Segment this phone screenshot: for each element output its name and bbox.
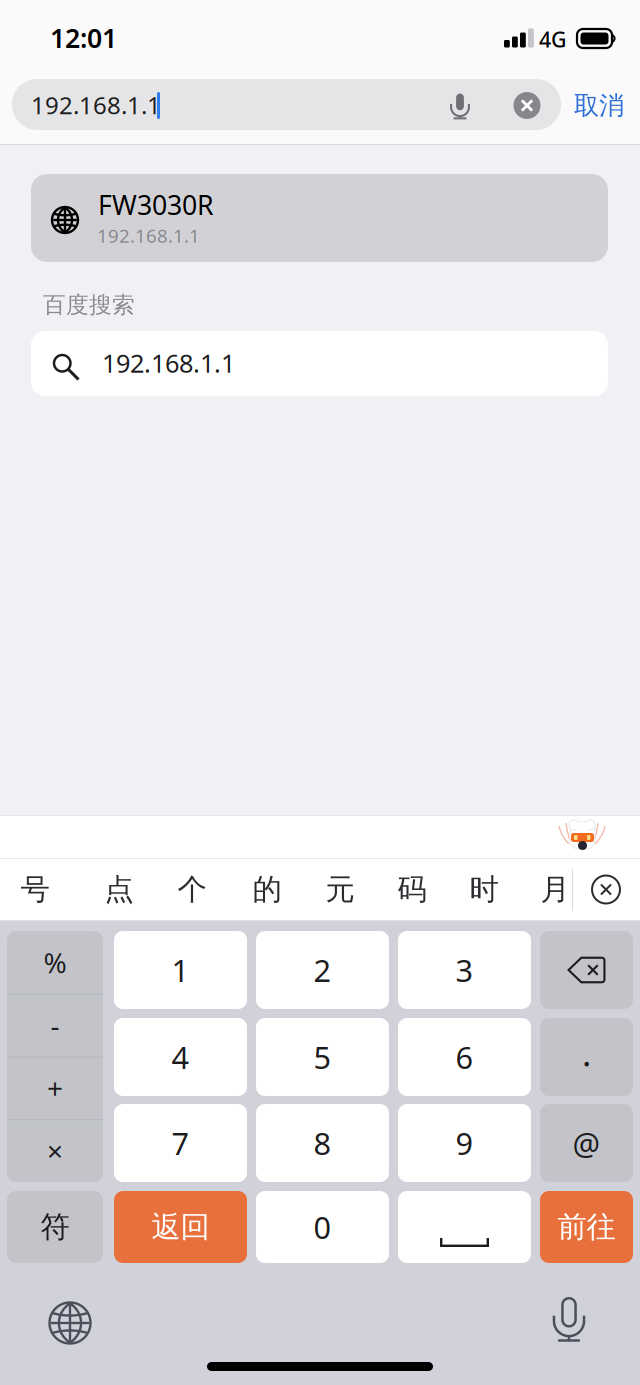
button[interactable]: 8 [256,1104,389,1182]
button[interactable]: Space [398,1191,531,1263]
button[interactable]: 192.168.1.1 [31,331,608,396]
staticText: + [47,1069,63,1106]
button[interactable]: 6 [398,1018,531,1096]
staticText: 时 [469,871,498,907]
staticText: . [582,1030,591,1076]
staticText: 月 [540,871,569,907]
button[interactable]: 0 [256,1191,389,1263]
button[interactable]: 号 [0,858,70,921]
staticText: 192.168.1.1 [102,346,235,380]
staticText: 号 [20,871,49,907]
button[interactable]: 时 [449,858,519,921]
staticText: 4 [171,1037,189,1077]
button[interactable]: 符 [7,1191,103,1263]
staticText: 2 [313,950,331,990]
button[interactable]: 7 [114,1104,247,1182]
staticText: 元 [325,871,354,907]
staticText: 0 [313,1207,331,1247]
staticText: 点 [104,871,133,907]
button[interactable]: - [7,994,103,1057]
staticText: 码 [397,871,426,907]
button[interactable]: Close candidates [573,858,639,921]
staticText: % [43,944,66,981]
button[interactable]: 9 [398,1104,531,1182]
staticText: 前往 [557,1209,615,1245]
staticText: 1 [171,950,189,990]
button[interactable]: 的 [232,858,302,921]
button[interactable]: 点 [84,858,154,921]
button[interactable]: 1 [114,931,247,1009]
button[interactable]: 个 [157,858,227,921]
staticText: 个 [177,871,206,907]
staticText: 符 [40,1209,69,1245]
staticText: 192.168.1.1 [97,223,200,248]
button[interactable]: × [7,1119,103,1182]
staticText: 192.168.1.1 [31,89,161,121]
button[interactable]: Delete [540,931,633,1009]
staticText: 取消 [574,90,624,121]
button[interactable]: FW3030R [31,174,608,262]
button[interactable]: 2 [256,931,389,1009]
staticText: 的 [252,871,281,907]
button[interactable]: 3 [398,931,531,1009]
button[interactable]: 取消 [574,90,632,121]
staticText: 7 [171,1123,189,1163]
button[interactable]: Switch keyboard [35,1288,105,1358]
staticText: × [47,1132,63,1169]
staticText: @ [572,1123,600,1163]
staticText: 百度搜索 [43,291,135,319]
button[interactable]: . [540,1018,633,1096]
staticText: 9 [455,1123,473,1163]
button[interactable]: Dictation [539,1290,599,1350]
staticText: 5 [313,1037,331,1077]
staticText: FW3030R [98,187,214,222]
button[interactable]: 码 [377,858,447,921]
staticText: 3 [455,950,473,990]
button[interactable]: Clear text [502,80,552,131]
staticText: 12:01 [50,20,117,55]
staticText: - [50,1006,59,1044]
button[interactable]: 月 [520,858,590,921]
button[interactable]: + [7,1056,103,1119]
button[interactable]: 前往 [540,1191,633,1263]
button[interactable]: Voice search [435,81,485,132]
button[interactable]: % [7,931,103,994]
button[interactable]: 4 [114,1018,247,1096]
button[interactable]: 元 [305,858,375,921]
staticText: 8 [313,1123,331,1163]
staticText: 4G [539,25,567,53]
button[interactable]: 返回 [114,1191,247,1263]
staticText: 返回 [151,1209,209,1245]
button[interactable]: 5 [256,1018,389,1096]
button[interactable]: @ [540,1104,633,1182]
staticText: 6 [455,1037,473,1077]
